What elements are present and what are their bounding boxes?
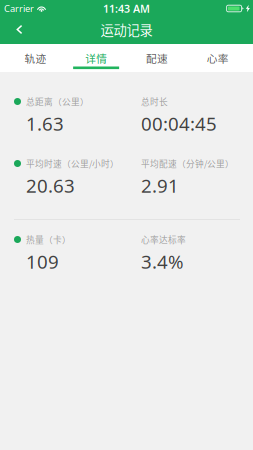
- staticText: 配速: [146, 50, 168, 66]
- staticText: 运动记录: [100, 20, 152, 39]
- button[interactable]: 心率: [187, 44, 248, 71]
- staticText: 轨迹: [24, 50, 46, 66]
- button[interactable]: 轨迹: [5, 44, 66, 71]
- staticText: 平均时速（公里/小时）: [26, 157, 119, 170]
- staticText: 11:43 AM: [103, 1, 150, 16]
- staticText: 心率达标率: [141, 233, 186, 246]
- staticText: 3.4%: [141, 249, 184, 274]
- staticText: 1.63: [26, 111, 64, 136]
- staticText: 00:04:45: [141, 111, 217, 136]
- staticText: Carrier: [4, 2, 34, 15]
- staticText: 20.63: [26, 173, 75, 198]
- staticText: 心率: [207, 50, 229, 66]
- staticText: 平均配速（分钟/公里）: [141, 157, 234, 170]
- staticText: 总距离（公里）: [26, 95, 89, 108]
- button[interactable]: Back: [0, 16, 40, 43]
- button[interactable]: 详情: [66, 44, 127, 71]
- staticText: 热量（卡）: [26, 233, 71, 246]
- staticText: 2.91: [141, 173, 179, 198]
- staticText: 总时长: [141, 95, 168, 108]
- staticText: 详情: [85, 50, 107, 66]
- button[interactable]: 配速: [126, 44, 187, 71]
- staticText: 109: [26, 249, 59, 274]
